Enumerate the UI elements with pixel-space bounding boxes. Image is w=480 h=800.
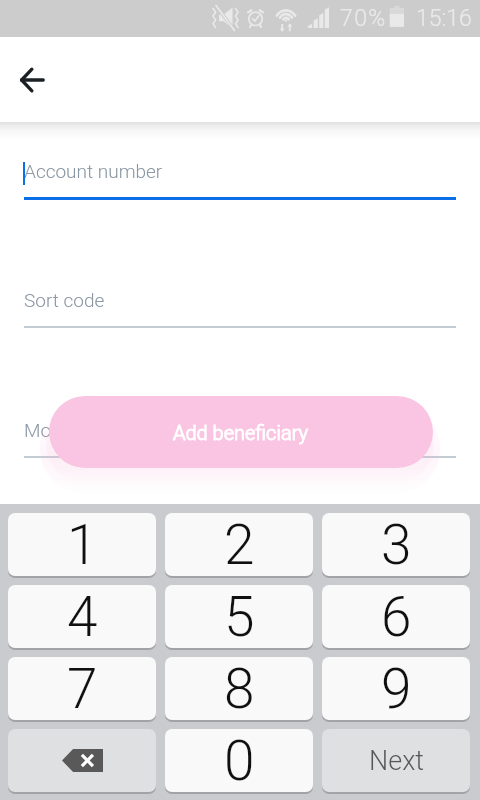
staticText: 0	[224, 729, 255, 792]
button[interactable]: 4	[8, 585, 156, 648]
staticText: 4	[67, 585, 98, 648]
staticText: Account number	[24, 160, 163, 182]
button[interactable]: Next	[322, 729, 470, 792]
button[interactable]: 0	[165, 729, 313, 792]
staticText: 15:16	[416, 5, 472, 32]
staticText: 2	[224, 513, 255, 576]
button[interactable]: 2	[165, 513, 313, 576]
staticText: 8	[224, 657, 255, 720]
button[interactable]: Backspace	[8, 729, 156, 792]
staticText: 9	[381, 657, 412, 720]
button[interactable]: 7	[8, 657, 156, 720]
button[interactable]: 5	[165, 585, 313, 648]
staticText: 3	[381, 513, 412, 576]
button[interactable]: 6	[322, 585, 470, 648]
staticText: Add beneficiary	[173, 421, 309, 444]
staticText: Sort code	[24, 289, 105, 311]
staticText: 7	[67, 657, 98, 720]
button[interactable]: 9	[322, 657, 470, 720]
button[interactable]: 1	[8, 513, 156, 576]
staticText: 6	[381, 585, 412, 648]
button[interactable]: Add beneficiary	[49, 396, 433, 468]
staticText: Mobile number	[24, 419, 150, 441]
button[interactable]: 3	[322, 513, 470, 576]
button[interactable]: 8	[165, 657, 313, 720]
button[interactable]: Back	[10, 57, 56, 103]
staticText: 1	[67, 513, 98, 576]
staticText: 70%	[340, 5, 387, 32]
staticText: Next	[369, 745, 424, 777]
staticText: 5	[224, 585, 255, 648]
